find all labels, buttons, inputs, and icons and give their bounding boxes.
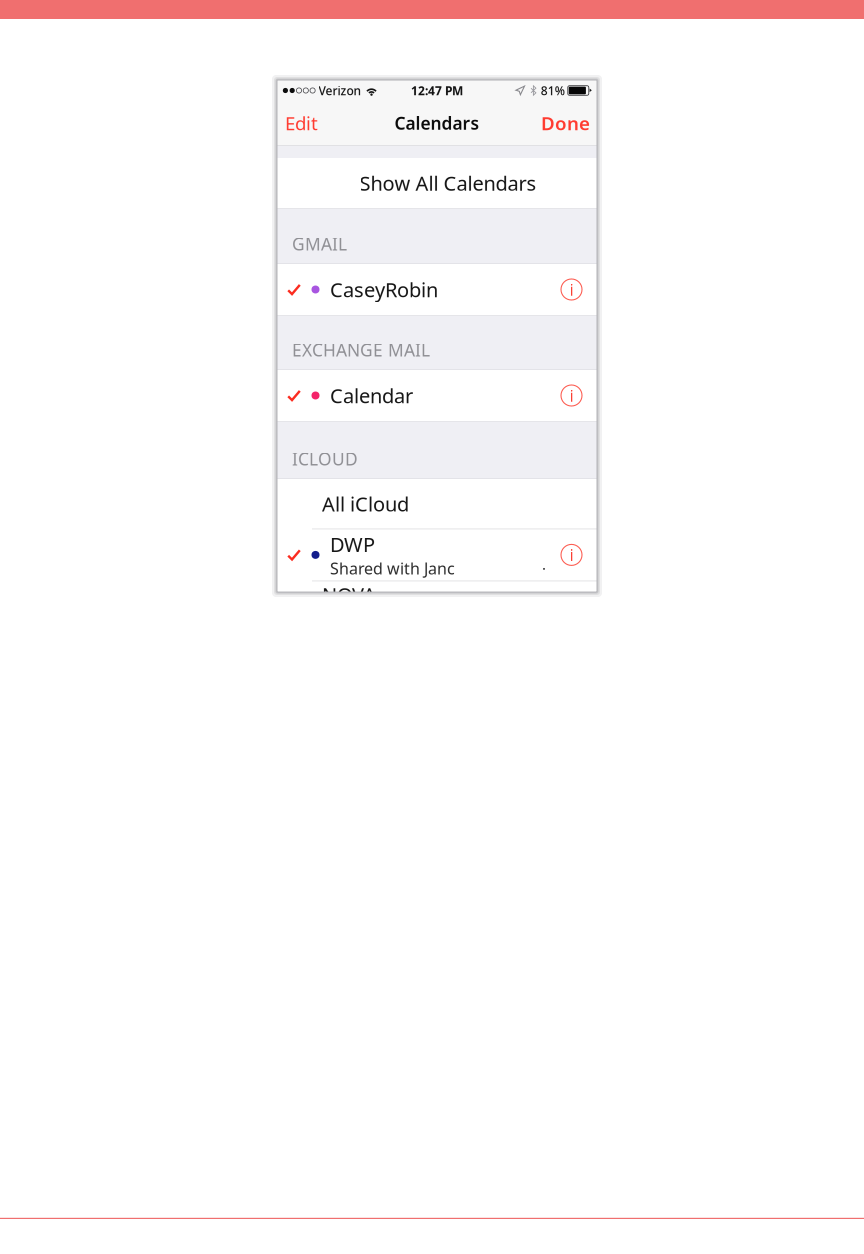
staticText: Edit [285, 111, 318, 135]
staticText: EXCHANGE MAIL [292, 338, 430, 361]
button[interactable]: Show All Calendars [277, 158, 597, 208]
staticText: Calendars [394, 111, 479, 134]
staticText: CaseyRobin [330, 276, 438, 303]
staticText: i [569, 385, 573, 406]
button[interactable]: CaseyRobin [277, 264, 597, 315]
staticText: i [569, 544, 573, 565]
staticText: Calendar [330, 382, 413, 409]
staticText: Verizon [318, 82, 361, 98]
button[interactable]: NOVA [277, 580, 597, 592]
staticText: ICLOUD [292, 447, 358, 470]
staticText: Show All Calendars [359, 170, 536, 196]
staticText: GMAIL [292, 232, 347, 255]
button[interactable]: Calendar [277, 370, 597, 421]
staticText: All iCloud [322, 490, 409, 517]
staticText: Shared with Janc [330, 558, 455, 579]
staticText: Done [541, 111, 590, 135]
button[interactable]: DWP [277, 528, 597, 580]
button[interactable]: Done [529, 101, 597, 145]
staticText: i [569, 279, 573, 300]
staticText: 12:47 PM [411, 82, 463, 98]
button[interactable]: Edit [277, 101, 330, 145]
staticText: NOVA [322, 581, 376, 608]
button[interactable]: All iCloud [277, 479, 597, 528]
staticText: DWP [330, 531, 375, 558]
staticText: 81% [541, 82, 565, 98]
